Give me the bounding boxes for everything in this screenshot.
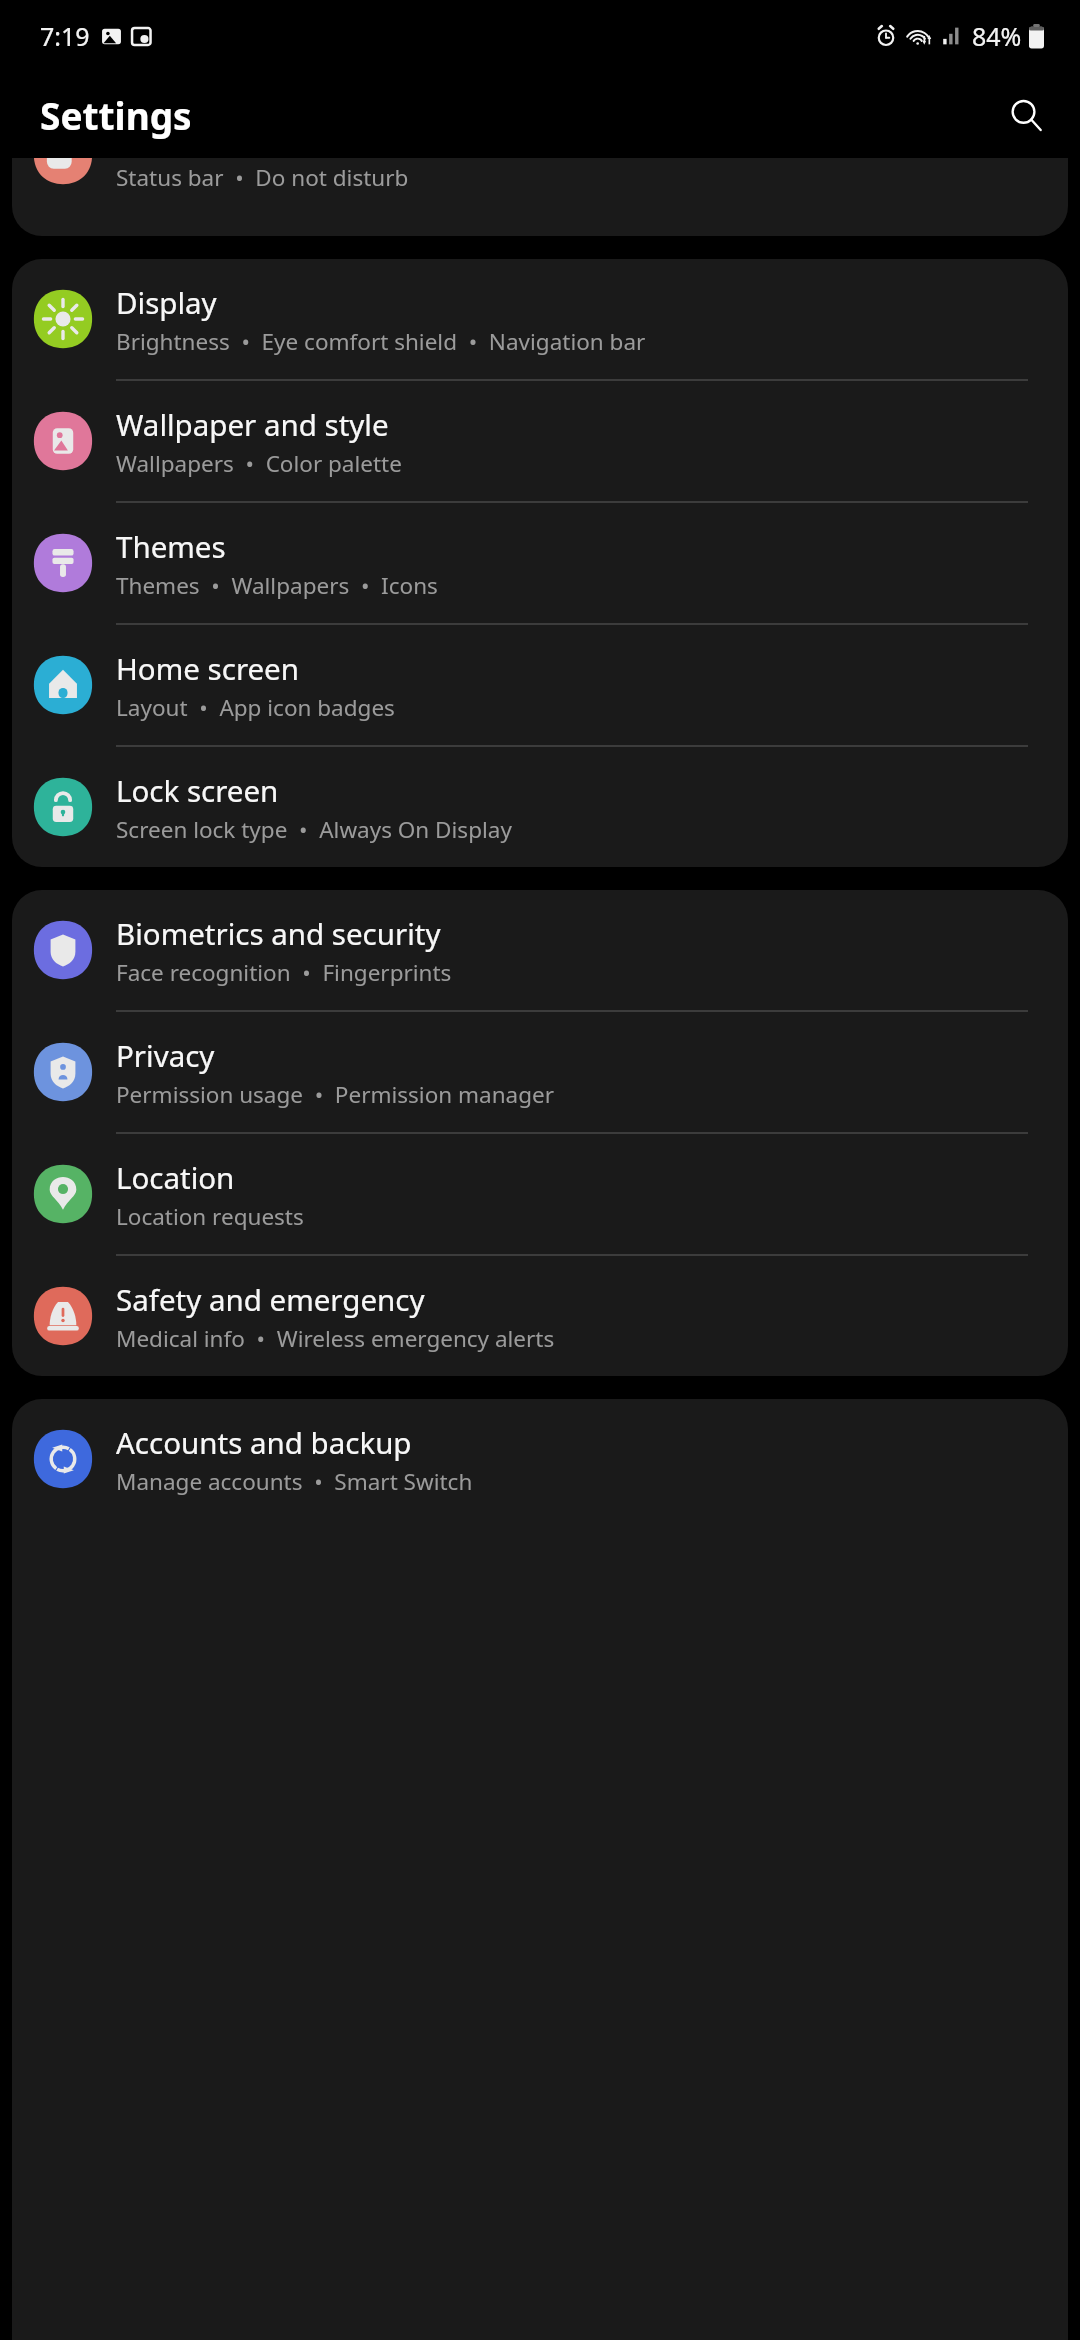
staticText: Wallpapers • Color palette xyxy=(116,448,402,479)
staticText: Wallpaper and style xyxy=(116,404,389,444)
button[interactable]: Display xyxy=(12,259,1068,381)
staticText: 84% xyxy=(972,19,1022,53)
staticText: Safety and emergency xyxy=(116,1279,425,1319)
staticText: Manage accounts • Smart Switch xyxy=(116,1466,473,1497)
staticText: Screen lock type • Always On Display xyxy=(116,814,512,845)
staticText: Status bar • Do not disturb xyxy=(116,162,409,193)
staticText: Biometrics and security xyxy=(116,913,441,953)
button[interactable]: Biometrics and security xyxy=(12,890,1068,1012)
staticText: Medical info • Wireless emergency alerts xyxy=(116,1323,555,1354)
button[interactable]: Location xyxy=(12,1134,1068,1256)
button[interactable]: Privacy xyxy=(12,1012,1068,1134)
staticText: Lock screen xyxy=(116,770,279,810)
staticText: Layout • App icon badges xyxy=(116,692,395,723)
button[interactable]: Safety and emergency xyxy=(12,1256,1068,1376)
staticText: Themes xyxy=(116,526,226,566)
button[interactable]: Wallpaper and style xyxy=(12,381,1068,503)
staticText: Privacy xyxy=(116,1035,215,1075)
button[interactable]: Themes xyxy=(12,503,1068,625)
button[interactable]: Search xyxy=(998,87,1054,143)
staticText: Themes • Wallpapers • Icons xyxy=(116,570,438,601)
button[interactable]: Accounts and backup xyxy=(12,1399,1068,1519)
staticText: Accounts and backup xyxy=(116,1422,412,1462)
staticText: 7:19 xyxy=(40,19,90,53)
staticText: Brightness • Eye comfort shield • Naviga… xyxy=(116,326,646,357)
staticText: Display xyxy=(116,282,217,322)
button[interactable]: Notifications xyxy=(12,158,1068,194)
staticText: Settings xyxy=(40,90,192,140)
staticText: Face recognition • Fingerprints xyxy=(116,957,452,988)
button[interactable]: Lock screen xyxy=(12,747,1068,867)
staticText: Location requests xyxy=(116,1201,304,1232)
button[interactable]: Home screen xyxy=(12,625,1068,747)
staticText: Location xyxy=(116,1157,235,1197)
staticText: Home screen xyxy=(116,648,299,688)
staticText: Permission usage • Permission manager xyxy=(116,1079,555,1110)
